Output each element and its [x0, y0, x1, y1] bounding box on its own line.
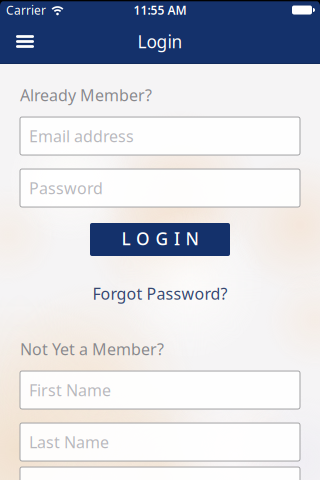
staticText: Last Name: [29, 431, 109, 453]
staticText: 11:55 AM: [133, 2, 186, 18]
button[interactable]: Forgot Password?: [92, 284, 227, 303]
staticText: First Name: [29, 379, 111, 401]
staticText: L: [121, 227, 130, 250]
button[interactable]: Last Name: [20, 423, 300, 461]
staticText: Carrier: [6, 2, 46, 18]
staticText: O: [136, 227, 150, 250]
button[interactable]: First Name: [20, 371, 300, 409]
button[interactable]: Email address: [20, 117, 300, 155]
button[interactable]: L: [90, 223, 230, 256]
button[interactable]: Password: [20, 169, 300, 207]
staticText: Already Member?: [20, 84, 152, 106]
staticText: Login: [137, 30, 182, 53]
staticText: Email address: [29, 125, 134, 147]
button[interactable]: [20, 467, 300, 480]
staticText: Not Yet a Member?: [20, 338, 164, 360]
staticText: Password: [29, 177, 103, 199]
staticText: N: [185, 227, 198, 250]
button[interactable]: [0, 27, 34, 56]
staticText: G: [155, 227, 168, 250]
staticText: Forgot Password?: [92, 283, 227, 304]
staticText: I: [174, 227, 180, 250]
